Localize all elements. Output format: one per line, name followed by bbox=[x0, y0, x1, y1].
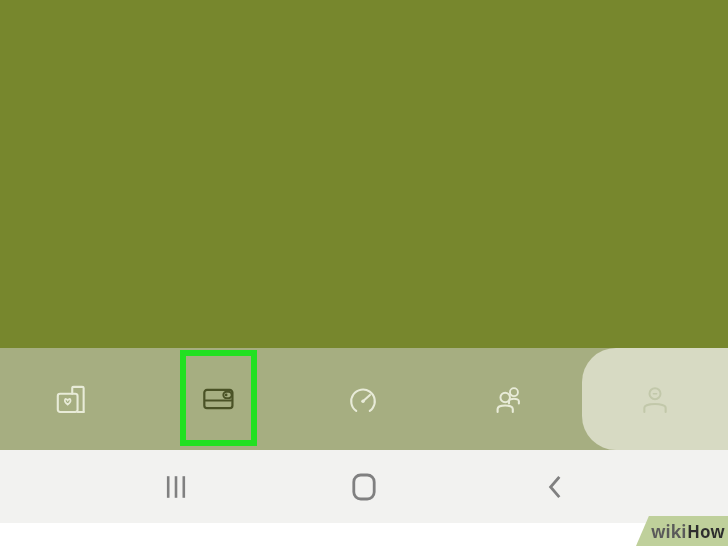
staticText: How bbox=[687, 520, 725, 543]
staticText: wiki bbox=[651, 520, 687, 543]
button[interactable]: Recent apps bbox=[148, 459, 204, 515]
button[interactable]: Profile bbox=[582, 348, 728, 450]
button[interactable]: Home bbox=[336, 459, 392, 515]
button[interactable]: Friends bbox=[436, 348, 582, 450]
button[interactable]: Back bbox=[528, 459, 584, 515]
button[interactable]: Wallet bbox=[145, 348, 290, 450]
button[interactable]: Activity bbox=[290, 348, 436, 450]
button[interactable]: Shop bbox=[0, 348, 145, 450]
